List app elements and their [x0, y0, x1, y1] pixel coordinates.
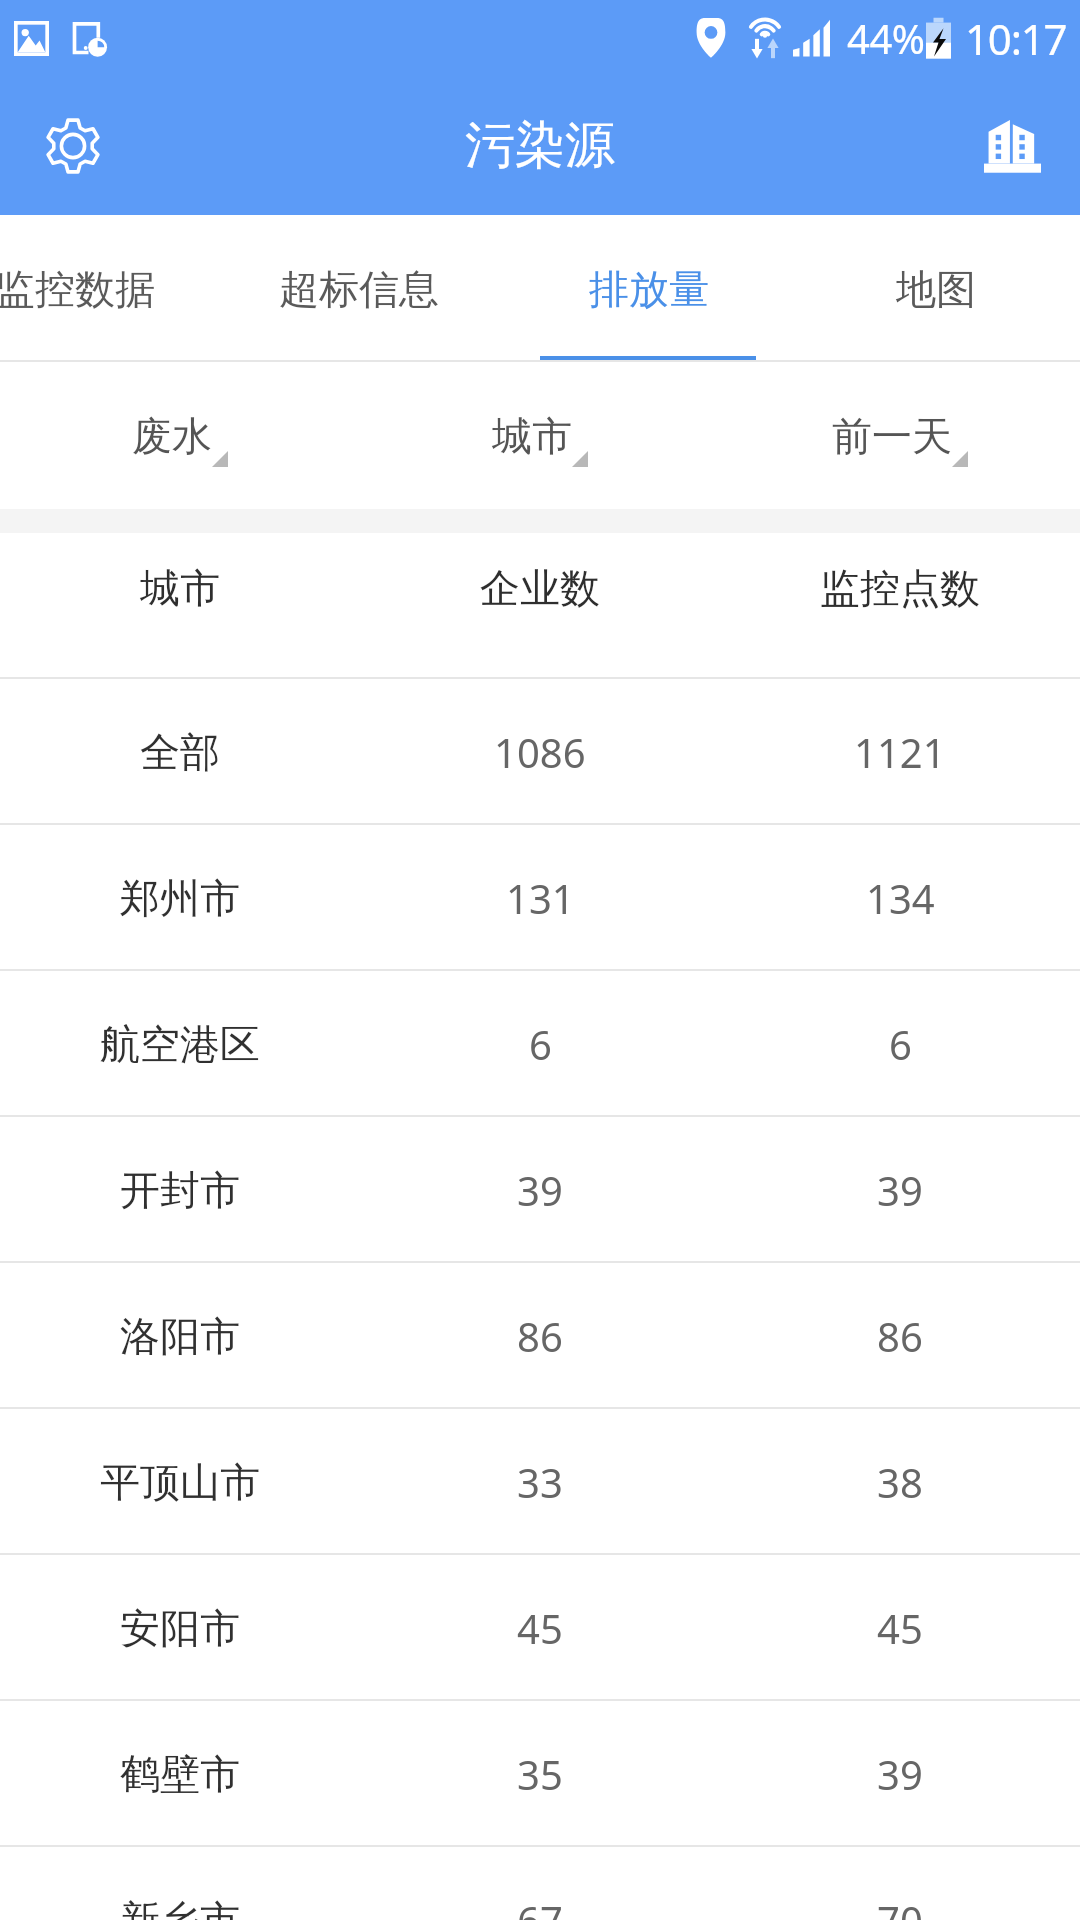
- staticText: 44%: [847, 11, 925, 65]
- staticText: 超标信息: [279, 264, 439, 314]
- button[interactable]: 地图: [792, 215, 1079, 362]
- staticText: 污染源: [465, 114, 615, 177]
- staticText: 39: [517, 1163, 563, 1217]
- staticText: 86: [517, 1309, 563, 1363]
- staticText: 38: [877, 1455, 923, 1509]
- staticText: 6: [529, 1017, 552, 1071]
- staticText: 郑州市: [120, 873, 240, 923]
- staticText: 70: [877, 1893, 923, 1920]
- button[interactable]: 鹤壁市: [0, 1701, 1080, 1847]
- staticText: 鹤壁市: [120, 1749, 240, 1799]
- staticText: 安阳市: [120, 1603, 240, 1653]
- staticText: 洛阳市: [120, 1311, 240, 1361]
- staticText: 45: [517, 1601, 563, 1655]
- button[interactable]: Settings: [25, 98, 121, 194]
- button[interactable]: 新乡市: [0, 1847, 1080, 1920]
- button[interactable]: 平顶山市: [0, 1409, 1080, 1555]
- staticText: 全部: [140, 727, 220, 777]
- staticText: 监控点数: [820, 563, 980, 613]
- staticText: 前一天: [832, 411, 952, 461]
- button[interactable]: Enterprises: [964, 98, 1060, 194]
- button[interactable]: 前一天: [720, 362, 1080, 509]
- button[interactable]: 超标信息: [215, 215, 502, 362]
- staticText: 地图: [896, 264, 976, 314]
- staticText: 10:17: [965, 10, 1067, 67]
- staticText: 城市: [140, 563, 220, 613]
- button[interactable]: 洛阳市: [0, 1263, 1080, 1409]
- button[interactable]: 监控数据: [0, 215, 218, 362]
- staticText: 35: [517, 1747, 563, 1801]
- staticText: 企业数: [480, 563, 600, 613]
- button[interactable]: 安阳市: [0, 1555, 1080, 1701]
- staticText: 平顶山市: [100, 1457, 260, 1507]
- staticText: 城市: [492, 411, 572, 461]
- staticText: 航空港区: [100, 1019, 260, 1069]
- staticText: 排放量: [589, 264, 709, 314]
- staticText: 86: [877, 1309, 923, 1363]
- staticText: 131: [506, 871, 575, 925]
- staticText: 33: [517, 1455, 563, 1509]
- staticText: 监控数据: [0, 264, 155, 314]
- staticText: 开封市: [120, 1165, 240, 1215]
- button[interactable]: 城市: [360, 362, 720, 509]
- staticText: 134: [866, 871, 935, 925]
- staticText: 6: [889, 1017, 912, 1071]
- staticText: 39: [877, 1747, 923, 1801]
- staticText: 废水: [132, 411, 212, 461]
- staticText: 39: [877, 1163, 923, 1217]
- button[interactable]: 开封市: [0, 1117, 1080, 1263]
- button[interactable]: 郑州市: [0, 825, 1080, 971]
- staticText: 1121: [854, 725, 946, 779]
- button[interactable]: 全部: [0, 679, 1080, 825]
- staticText: 1086: [494, 725, 586, 779]
- staticText: 新乡市: [120, 1895, 240, 1920]
- staticText: 45: [877, 1601, 923, 1655]
- button[interactable]: 航空港区: [0, 971, 1080, 1117]
- button[interactable]: 排放量: [505, 215, 792, 362]
- staticText: 67: [517, 1893, 563, 1920]
- button[interactable]: 废水: [0, 362, 360, 509]
